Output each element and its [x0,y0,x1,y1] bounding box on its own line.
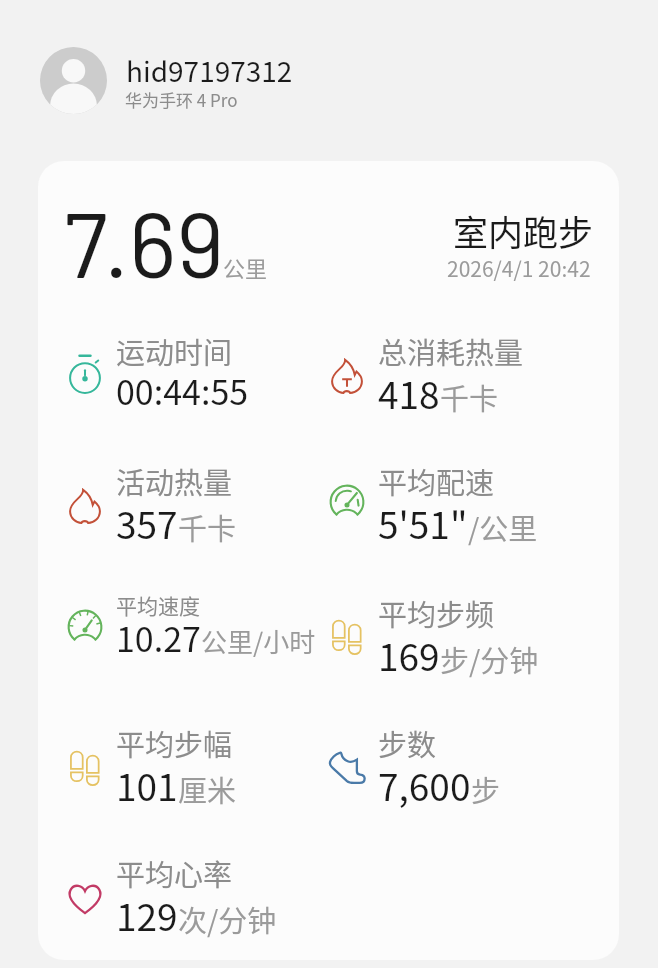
other: Duration [64,351,106,393]
staticText: 5'51" [378,496,468,550]
button[interactable] [320,324,570,428]
staticText: 129 [116,888,178,942]
staticText: 平均步频 [378,592,495,634]
other: Total calories [326,355,368,397]
staticText: /公里 [468,506,538,548]
other: Average pace [326,481,368,523]
staticText: 10.27 [116,613,201,662]
staticText: 平均速度 [116,590,200,620]
staticText: 活动热量 [116,460,233,502]
staticText: 357 [116,496,178,550]
staticText: 7,600 [378,758,471,812]
other: Active calories [64,485,106,527]
staticText: 厘米 [178,768,237,810]
staticText: 步数 [378,722,437,764]
button[interactable] [40,47,310,117]
staticText: 2026/4/1 20:42 [447,253,591,283]
staticText: 千卡 [440,376,499,418]
staticText: 运动时间 [116,330,233,372]
other: Cadence [64,746,106,788]
staticText: 00:44:55 [116,366,249,415]
staticText: 千卡 [178,506,237,548]
staticText: 公里/小时 [201,622,316,660]
button[interactable] [58,454,308,558]
staticText: 7.69 [64,186,225,296]
staticText: 次/分钟 [178,898,277,940]
staticText: 公里 [223,251,268,283]
button[interactable] [320,715,570,819]
button[interactable] [58,846,308,950]
staticText: 101 [116,758,178,812]
other: Cadence [326,615,368,657]
staticText: 步/分钟 [440,638,539,680]
staticText: 418 [378,366,440,420]
staticText: 169 [378,628,440,682]
staticText: 平均步幅 [116,722,233,764]
button[interactable] [58,320,308,424]
staticText: 室内跑步 [453,205,594,256]
button[interactable] [58,575,308,679]
staticText: 步 [471,768,501,810]
button[interactable] [320,450,570,554]
other: Steps [326,746,368,788]
other: Heart rate [64,877,106,919]
staticText: 平均配速 [378,460,495,502]
other: Average speed [64,606,106,648]
button[interactable] [58,715,308,819]
staticText: 华为手环 4 Pro [125,87,238,112]
staticText: 总消耗热量 [378,330,524,372]
staticText: 平均心率 [116,852,233,894]
staticText: hid97197312 [126,50,293,91]
button[interactable] [320,584,570,688]
